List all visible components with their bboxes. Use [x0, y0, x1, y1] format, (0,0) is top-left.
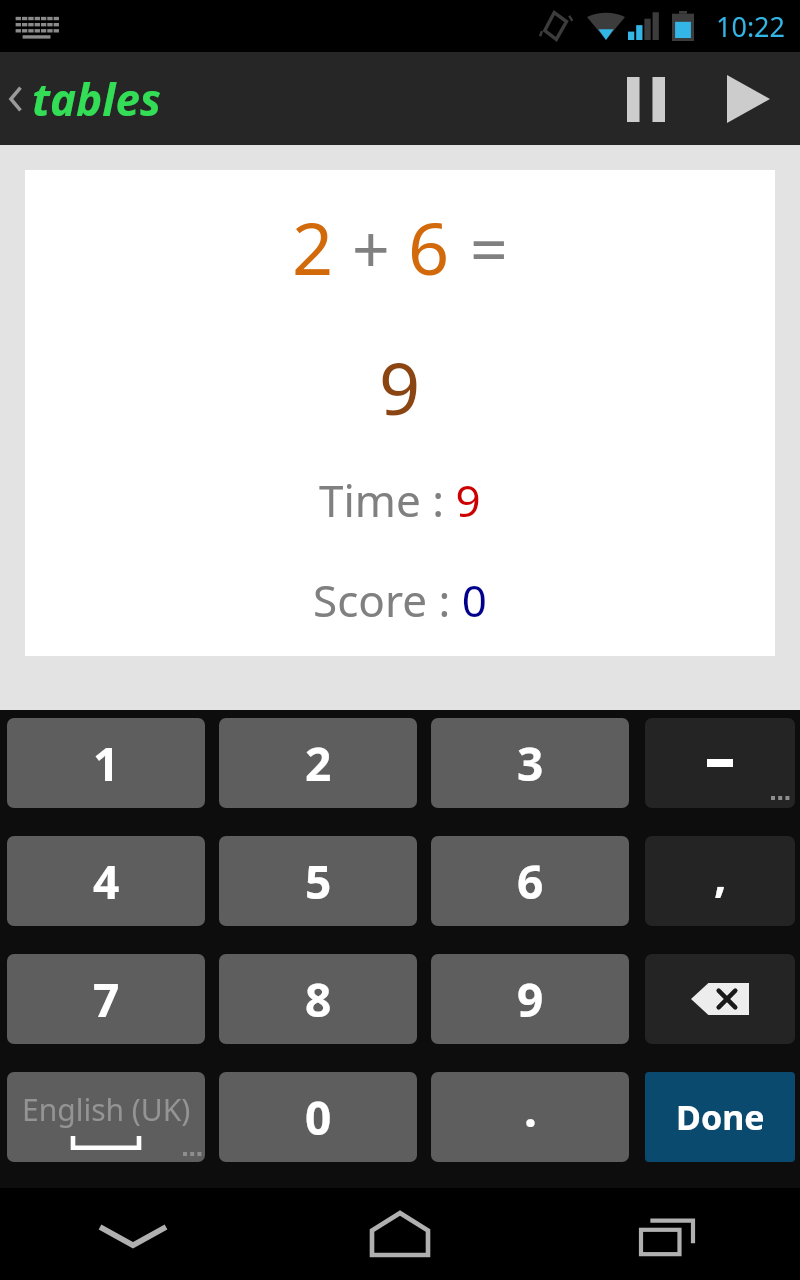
button[interactable]: 7: [7, 954, 205, 1044]
staticText: 9: [379, 338, 421, 436]
button[interactable]: .: [431, 1072, 629, 1162]
button[interactable]: Play: [714, 65, 782, 133]
button[interactable]: Done: [645, 1072, 795, 1162]
staticText: =: [470, 202, 508, 292]
button[interactable]: Hide keyboard: [0, 1188, 266, 1280]
button[interactable]: 4: [7, 836, 205, 926]
button[interactable]: Home: [266, 1188, 533, 1280]
staticText: 9: [517, 968, 544, 1031]
staticText: 6: [517, 850, 544, 913]
staticText: 4: [93, 850, 120, 913]
staticText: 7: [93, 968, 120, 1031]
staticText: Time : 9: [319, 470, 481, 530]
staticText: 2: [305, 732, 332, 795]
staticText: 10:22: [716, 8, 786, 45]
button[interactable]: 8: [219, 954, 417, 1044]
staticText: .: [524, 1078, 537, 1141]
staticText: 5: [305, 850, 332, 913]
staticText: 2: [292, 198, 334, 296]
staticText: 0: [305, 1086, 332, 1149]
button[interactable]: tables: [0, 61, 171, 137]
button[interactable]: Backspace: [645, 954, 795, 1044]
staticText: Done: [676, 1094, 765, 1140]
staticText: 8: [305, 968, 332, 1031]
button[interactable]: Pause: [612, 65, 680, 133]
staticText: 1: [93, 732, 120, 795]
staticText: +: [352, 202, 390, 292]
button[interactable]: 5: [219, 836, 417, 926]
button[interactable]: ,: [645, 836, 795, 926]
staticText: 6: [408, 198, 450, 296]
button[interactable]: 0: [219, 1072, 417, 1162]
button[interactable]: 2: [219, 718, 417, 808]
button[interactable]: 6: [431, 836, 629, 926]
staticText: tables: [32, 69, 161, 129]
button[interactable]: Change keyboard language: [7, 1072, 205, 1162]
button[interactable]: 9: [431, 954, 629, 1044]
staticText: 3: [517, 732, 544, 795]
button[interactable]: [645, 718, 795, 808]
staticText: English (UK): [22, 1089, 191, 1130]
button[interactable]: 1: [7, 718, 205, 808]
button[interactable]: 3: [431, 718, 629, 808]
button[interactable]: Recent apps: [533, 1188, 800, 1280]
staticText: Score : 0: [313, 570, 487, 630]
staticText: ,: [714, 845, 727, 905]
